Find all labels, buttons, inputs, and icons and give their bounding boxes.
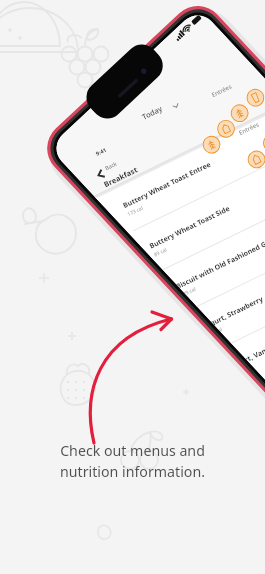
staticText: Check out menus and nutrition informatio… <box>60 441 205 481</box>
